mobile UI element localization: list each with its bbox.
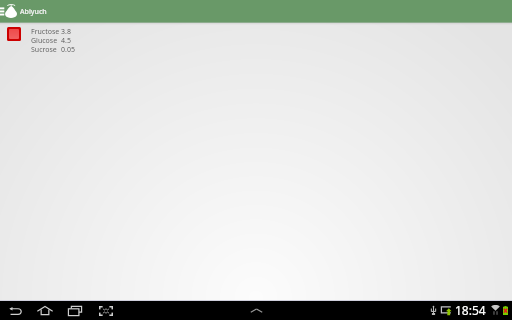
staticText: Sucrose	[31, 45, 57, 54]
staticText: Fructose	[31, 27, 60, 36]
staticText: Glucose	[31, 36, 58, 45]
button[interactable]: Home	[37, 305, 53, 316]
button[interactable]: Back	[8, 306, 22, 316]
staticText: 0.05	[61, 45, 75, 54]
button[interactable]: Screenshot	[99, 305, 113, 316]
button[interactable]: Open navigation drawer	[0, 0, 5, 22]
staticText: 3.8	[61, 27, 71, 36]
button[interactable]: Recent apps	[68, 305, 82, 316]
staticText: Abiyuch	[20, 7, 47, 17]
staticText: 18:54	[455, 302, 486, 318]
staticText: 4.5	[61, 36, 71, 45]
